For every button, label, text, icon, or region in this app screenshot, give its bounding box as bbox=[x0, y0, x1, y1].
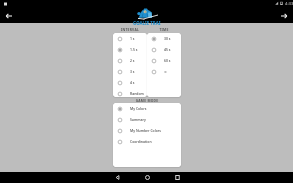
button[interactable]: 1 s bbox=[113, 33, 147, 44]
staticText: 1 s bbox=[130, 36, 135, 41]
button[interactable]: Navigate up bbox=[2, 9, 16, 23]
staticText: 30 s bbox=[164, 36, 171, 41]
staticText: TIME bbox=[147, 27, 181, 31]
button[interactable]: 2 s bbox=[113, 55, 147, 66]
button[interactable]: My Number Colors bbox=[113, 125, 181, 136]
button[interactable]: 30 s bbox=[147, 33, 181, 44]
button[interactable]: Home bbox=[132, 172, 162, 183]
staticText: 4 s bbox=[130, 80, 135, 85]
staticText: 3 s bbox=[130, 69, 135, 74]
staticText: Coordination bbox=[130, 139, 152, 144]
staticText: My Colors bbox=[130, 106, 147, 111]
button[interactable]: Next bbox=[277, 9, 291, 23]
button[interactable]: 60 s bbox=[147, 55, 181, 66]
staticText: 45 s bbox=[164, 47, 171, 52]
button[interactable]: Summary bbox=[113, 114, 181, 125]
staticText: GOALIE TRAINING bbox=[133, 20, 161, 26]
staticText: My Number Colors bbox=[130, 128, 161, 133]
button[interactable]: My Colors bbox=[113, 103, 181, 114]
button[interactable]: 1.5 s bbox=[113, 44, 147, 55]
staticText: GAME MODE bbox=[113, 98, 181, 102]
staticText: ∞ bbox=[164, 70, 167, 74]
staticText: 60 s bbox=[164, 58, 171, 63]
button[interactable]: Random bbox=[113, 88, 147, 97]
staticText: Summary bbox=[130, 117, 146, 122]
button[interactable]: Back bbox=[102, 172, 132, 183]
button[interactable]: Recent apps bbox=[162, 172, 192, 183]
staticText: Random bbox=[130, 91, 144, 96]
staticText: INTERVAL bbox=[113, 27, 147, 31]
button[interactable]: 3 s bbox=[113, 66, 147, 77]
button[interactable]: 4 s bbox=[113, 77, 147, 88]
staticText: 1.5 s bbox=[130, 47, 138, 52]
button[interactable]: 45 s bbox=[147, 44, 181, 55]
button[interactable]: ∞ bbox=[147, 66, 181, 77]
staticText: 4:33 bbox=[285, 1, 293, 7]
button[interactable]: Coordination bbox=[113, 136, 181, 147]
staticText: 2 s bbox=[130, 58, 135, 63]
